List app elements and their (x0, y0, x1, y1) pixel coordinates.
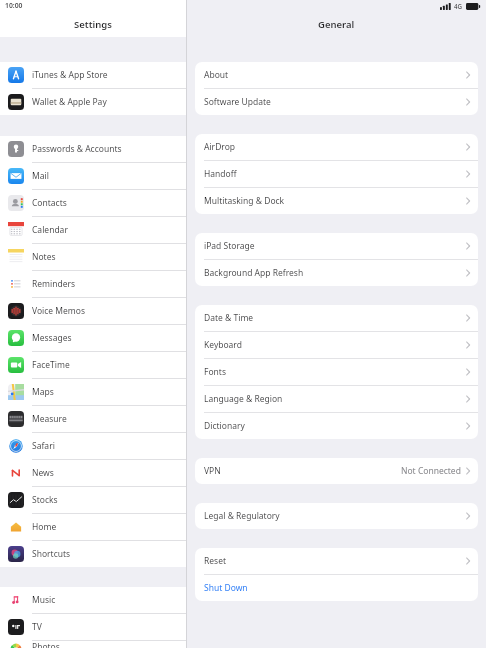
staticText: Software Update (204, 96, 271, 108)
button[interactable]: Messages (0, 325, 186, 352)
staticText: Voice Memos (32, 305, 86, 317)
button[interactable]: Handoff (195, 161, 478, 188)
button[interactable]: Keyboard (195, 332, 478, 359)
staticText: Dictionary (204, 420, 245, 432)
staticText: VPN (204, 465, 221, 477)
button[interactable]: Software Update (195, 89, 478, 115)
button[interactable]: About (195, 62, 478, 89)
staticText: Reminders (32, 278, 76, 290)
button[interactable]: Calendar (0, 217, 186, 244)
staticText: News (32, 467, 54, 479)
button[interactable]: Notes (0, 244, 186, 271)
staticText: TV (32, 621, 42, 633)
button[interactable]: Background App Refresh (195, 260, 478, 286)
staticText: Measure (32, 413, 67, 425)
button[interactable]: Legal & Regulatory (195, 503, 478, 529)
staticText: Notes (32, 251, 56, 263)
button[interactable]: Home (0, 514, 186, 541)
button[interactable]: Shut Down (195, 575, 478, 601)
button[interactable]: Shortcuts (0, 541, 186, 567)
button[interactable]: News (0, 460, 186, 487)
staticText: Safari (32, 440, 55, 452)
button[interactable]: Date & Time (195, 305, 478, 332)
button[interactable]: iTunes & App Store (0, 62, 186, 89)
button[interactable]: Safari (0, 433, 186, 460)
button[interactable]: Contacts (0, 190, 186, 217)
staticText: Fonts (204, 366, 226, 378)
button[interactable]: iPad Storage (195, 233, 478, 260)
staticText: Not Connected (401, 465, 461, 477)
staticText: Contacts (32, 197, 67, 209)
staticText: Reset (204, 555, 227, 567)
staticText: Mail (32, 170, 49, 182)
button[interactable]: Mail (0, 163, 186, 190)
staticText: Music (32, 594, 56, 606)
button[interactable]: TV (0, 614, 186, 641)
button[interactable]: AirDrop (195, 134, 478, 161)
button[interactable]: Wallet & Apple Pay (0, 89, 186, 115)
staticText: Shortcuts (32, 548, 71, 560)
button[interactable]: Photos (0, 641, 186, 648)
button[interactable]: Fonts (195, 359, 478, 386)
staticText: Wallet & Apple Pay (32, 96, 107, 108)
button[interactable]: Multitasking & Dock (195, 188, 478, 214)
staticText: Messages (32, 332, 72, 344)
staticText: iTunes & App Store (32, 69, 108, 81)
staticText: Photos (32, 641, 60, 648)
staticText: Legal & Regulatory (204, 510, 280, 522)
staticText: Calendar (32, 224, 68, 236)
staticText: Settings (74, 18, 112, 31)
staticText: AirDrop (204, 141, 236, 153)
staticText: Language & Region (204, 393, 283, 405)
staticText: Shut Down (204, 582, 248, 594)
button[interactable]: Reminders (0, 271, 186, 298)
button[interactable]: Maps (0, 379, 186, 406)
button[interactable]: Stocks (0, 487, 186, 514)
staticText: General (318, 18, 355, 31)
button[interactable]: FaceTime (0, 352, 186, 379)
staticText: Maps (32, 386, 54, 398)
button[interactable]: Dictionary (195, 413, 478, 439)
button[interactable]: Voice Memos (0, 298, 186, 325)
staticText: 4G (454, 2, 463, 10)
staticText: FaceTime (32, 359, 70, 371)
staticText: Passwords & Accounts (32, 143, 122, 155)
button[interactable]: Passwords & Accounts (0, 136, 186, 163)
button[interactable]: Reset (195, 548, 478, 575)
button[interactable]: Measure (0, 406, 186, 433)
staticText: Keyboard (204, 339, 242, 351)
staticText: 10:00 (5, 1, 23, 10)
staticText: About (204, 69, 229, 81)
staticText: Stocks (32, 494, 58, 506)
staticText: Date & Time (204, 312, 254, 324)
button[interactable]: VPN (195, 458, 478, 484)
staticText: Home (32, 521, 57, 533)
staticText: Handoff (204, 168, 237, 180)
staticText: iPad Storage (204, 240, 255, 252)
button[interactable]: Music (0, 587, 186, 614)
staticText: Background App Refresh (204, 267, 304, 279)
staticText: Multitasking & Dock (204, 195, 285, 207)
button[interactable]: Language & Region (195, 386, 478, 413)
